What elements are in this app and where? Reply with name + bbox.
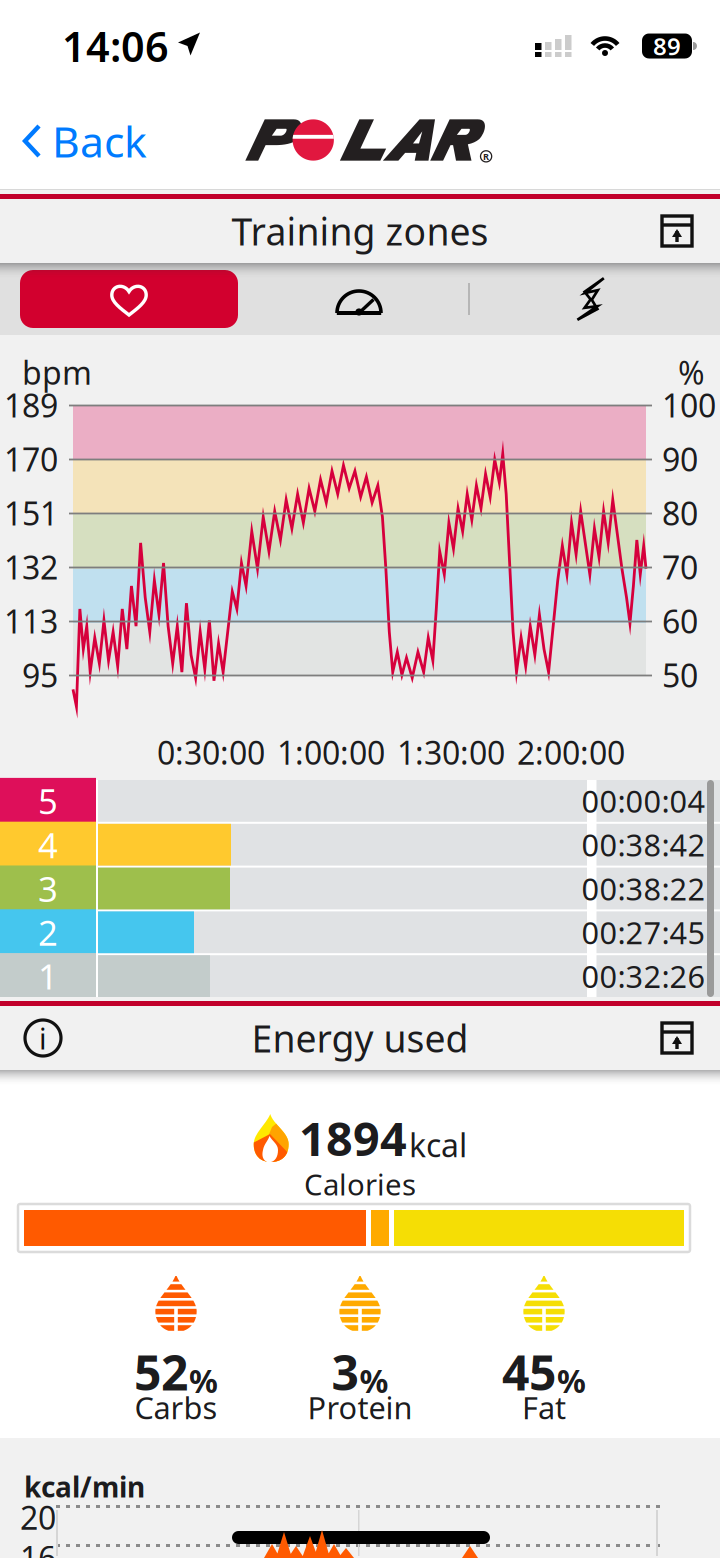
staticText: kcal: [409, 1123, 467, 1166]
staticText: 2: [38, 909, 58, 955]
staticText: 00:00:04: [581, 780, 705, 821]
staticText: Fat: [522, 1387, 566, 1428]
staticText: 89: [653, 30, 681, 62]
staticText: %: [189, 1359, 218, 1402]
staticText: 00:38:42: [581, 824, 705, 865]
staticText: 1:30:00: [397, 731, 505, 773]
staticText: 2:00:00: [517, 731, 625, 773]
staticText: 132: [4, 546, 58, 588]
button[interactable]: Expand: [644, 1006, 710, 1070]
staticText: 20: [20, 1496, 56, 1538]
staticText: bpm: [22, 351, 92, 393]
button[interactable]: Power: [482, 270, 700, 328]
staticText: 00:27:45: [581, 912, 705, 953]
staticText: 95: [22, 654, 58, 696]
button[interactable]: Back: [6, 103, 163, 179]
button[interactable]: Heart rate: [20, 270, 238, 328]
staticText: 100: [662, 384, 716, 426]
staticText: 60: [662, 600, 698, 642]
staticText: 90: [662, 438, 698, 480]
staticText: 4: [38, 822, 58, 868]
staticText: 1: [38, 953, 58, 999]
staticText: i: [39, 1018, 47, 1057]
staticText: 52: [134, 1340, 188, 1404]
staticText: 170: [4, 438, 58, 480]
button[interactable]: Information: [10, 1006, 76, 1070]
staticText: Energy used: [251, 1013, 468, 1063]
staticText: 1:00:00: [277, 731, 385, 773]
staticText: 45: [502, 1340, 556, 1404]
staticText: 3: [38, 865, 58, 911]
button[interactable]: Expand: [644, 199, 710, 263]
staticText: 00:32:26: [581, 956, 705, 996]
staticText: Back: [52, 113, 147, 169]
staticText: 16: [20, 1536, 56, 1558]
button[interactable]: Speed: [250, 270, 468, 328]
staticText: 70: [662, 546, 698, 588]
staticText: Carbs: [134, 1387, 217, 1428]
staticText: Calories: [304, 1164, 416, 1203]
staticText: 14:06: [62, 19, 169, 73]
staticText: 00:38:22: [581, 868, 705, 909]
staticText: Training zones: [231, 206, 488, 256]
staticText: %: [359, 1359, 388, 1402]
staticText: 151: [4, 492, 58, 534]
staticText: 50: [662, 654, 698, 696]
staticText: 5: [38, 778, 58, 824]
staticText: 80: [662, 492, 698, 534]
staticText: kcal/min: [24, 1468, 145, 1505]
staticText: 189: [4, 384, 58, 426]
staticText: 0:30:00: [157, 731, 265, 773]
staticText: %: [678, 351, 705, 393]
staticText: Protein: [307, 1387, 412, 1428]
staticText: 1894: [299, 1107, 407, 1169]
staticText: %: [557, 1359, 586, 1402]
staticText: 113: [4, 600, 58, 642]
staticText: 3: [331, 1340, 358, 1404]
